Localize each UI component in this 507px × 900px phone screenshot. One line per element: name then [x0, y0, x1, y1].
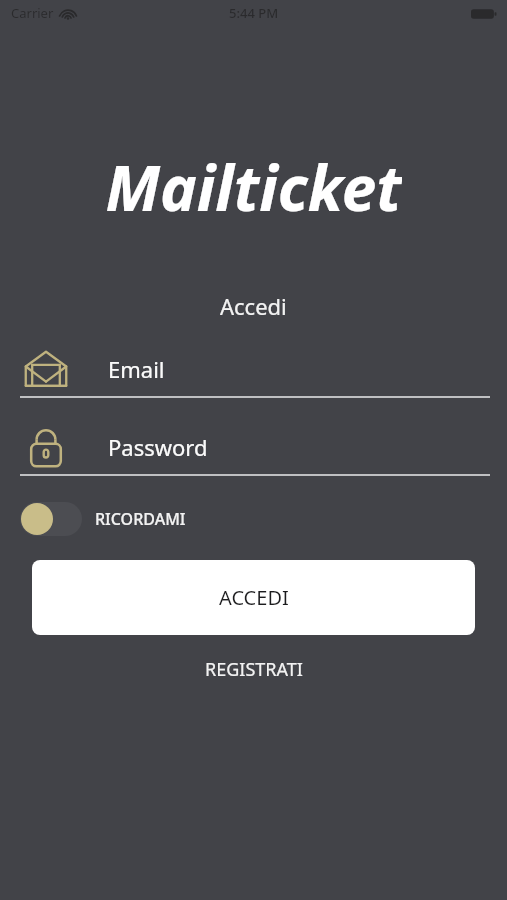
staticText: RICORDAMI [95, 508, 186, 530]
staticText: Password [108, 432, 208, 462]
staticText: ACCEDI [219, 584, 289, 611]
button[interactable]: Password [20, 420, 490, 476]
staticText: Accedi [220, 291, 287, 321]
button[interactable]: RICORDAMI [20, 499, 186, 539]
staticText: 5:44 PM [229, 4, 279, 22]
button[interactable]: Email [20, 342, 490, 398]
button[interactable]: ACCEDI [32, 560, 475, 635]
staticText: REGISTRATI [205, 657, 303, 682]
button[interactable]: REGISTRATI [205, 657, 303, 682]
other: Password [26, 424, 66, 470]
staticText: Email [108, 354, 165, 384]
other: Email [23, 348, 69, 390]
staticText: Carrier [11, 4, 54, 22]
staticText: Mailticket [105, 145, 402, 225]
